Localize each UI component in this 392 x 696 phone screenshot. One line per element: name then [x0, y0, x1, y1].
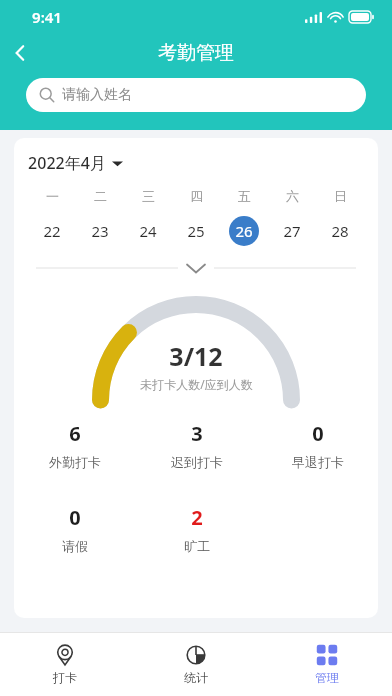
button[interactable]: 28	[316, 216, 364, 246]
button[interactable]: 24	[124, 216, 172, 246]
staticText: 3/12	[169, 339, 223, 373]
staticText: 六	[286, 188, 299, 204]
staticText: 请输入姓名	[62, 86, 132, 104]
button[interactable]: 0	[288, 416, 348, 474]
staticText: 23	[91, 221, 109, 241]
button[interactable]: 27	[268, 216, 316, 246]
staticText: 0	[69, 504, 81, 531]
staticText: 一	[46, 188, 59, 204]
button[interactable]: 管理	[261, 633, 392, 696]
staticText: 22	[43, 221, 61, 241]
button[interactable]: Expand calendar	[14, 260, 378, 276]
staticText: 五	[238, 188, 251, 204]
staticText: 26	[235, 221, 253, 241]
staticText: 迟到打卡	[171, 454, 223, 470]
staticText: 打卡	[53, 670, 77, 685]
button[interactable]: 打卡	[0, 633, 130, 696]
button[interactable]: 23	[76, 216, 124, 246]
staticText: 6	[69, 420, 81, 447]
staticText: 2	[191, 504, 203, 531]
button[interactable]: Back	[0, 34, 40, 72]
button[interactable]: 2	[180, 500, 214, 558]
staticText: 日	[334, 188, 347, 204]
button[interactable]: 请输入姓名	[26, 78, 366, 112]
staticText: 管理	[315, 670, 339, 685]
button[interactable]: 3	[167, 416, 227, 474]
staticText: 28	[331, 221, 349, 241]
staticText: 2022年4月	[28, 152, 106, 174]
staticText: 早退打卡	[292, 454, 344, 470]
button[interactable]: 6	[45, 416, 105, 474]
staticText: 三	[142, 188, 155, 204]
staticText: 25	[187, 221, 205, 241]
staticText: 24	[139, 221, 157, 241]
button[interactable]: 22	[28, 216, 76, 246]
button[interactable]: 25	[172, 216, 220, 246]
button[interactable]: 0	[58, 500, 92, 558]
staticText: 外勤打卡	[49, 454, 101, 470]
staticText: 0	[312, 420, 324, 447]
staticText: 未打卡人数/应到人数	[140, 376, 253, 392]
staticText: 3	[191, 420, 203, 447]
staticText: 旷工	[184, 538, 210, 554]
button[interactable]: 2022年4月	[28, 152, 123, 174]
staticText: 二	[94, 188, 107, 204]
staticText: 请假	[62, 538, 88, 554]
staticText: 考勤管理	[158, 41, 234, 65]
button[interactable]: 统计	[130, 633, 261, 696]
staticText: 四	[190, 188, 203, 204]
staticText: 统计	[184, 670, 208, 685]
staticText: 9:41	[32, 7, 62, 27]
staticText: 27	[283, 221, 301, 241]
button[interactable]: 26	[220, 216, 268, 246]
